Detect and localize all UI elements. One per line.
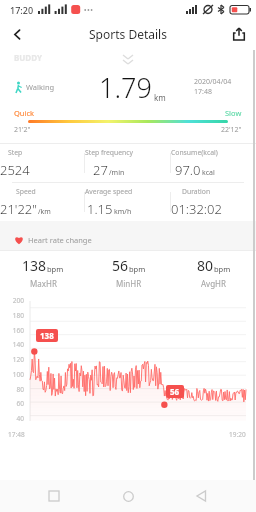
staticText: 138 bbox=[22, 256, 47, 275]
staticText: bpm bbox=[47, 264, 64, 274]
staticText: 138 bbox=[40, 330, 54, 341]
staticText: 80 bbox=[197, 256, 214, 275]
staticText: 56 bbox=[112, 256, 129, 275]
staticText: 120 bbox=[6, 355, 24, 364]
staticText: 2524 bbox=[0, 161, 30, 179]
staticText: 56 bbox=[170, 386, 180, 397]
staticText: 19:20 bbox=[229, 430, 246, 439]
staticText: 01:32:02 bbox=[171, 200, 222, 218]
button[interactable]: Recent apps bbox=[34, 480, 74, 512]
staticText: 27 bbox=[93, 161, 108, 179]
staticText: 22'12" bbox=[221, 125, 242, 135]
staticText: 140 bbox=[6, 340, 24, 349]
staticText: 80 bbox=[6, 385, 24, 394]
staticText: 160 bbox=[6, 326, 24, 335]
staticText: 1.15 bbox=[87, 200, 113, 218]
button[interactable]: Home bbox=[108, 480, 148, 512]
staticText: 21'2" bbox=[14, 125, 31, 135]
staticText: km/h bbox=[114, 207, 132, 217]
staticText: bpm bbox=[129, 264, 146, 274]
staticText: MinHR bbox=[116, 278, 142, 289]
staticText: 60 bbox=[6, 399, 24, 408]
staticText: 40 bbox=[6, 414, 24, 423]
staticText: 21'22" bbox=[0, 200, 37, 218]
button[interactable]: Back bbox=[0, 20, 34, 48]
staticText: Consume(kcal) bbox=[171, 148, 218, 157]
staticText: Slow bbox=[225, 108, 242, 118]
staticText: km bbox=[154, 92, 166, 103]
staticText: bpm bbox=[214, 264, 231, 274]
staticText: MaxHR bbox=[30, 278, 57, 289]
staticText: 97.0 bbox=[175, 161, 201, 179]
staticText: AvgHR bbox=[201, 278, 226, 289]
staticText: 200 bbox=[6, 296, 24, 305]
staticText: Average speed bbox=[85, 187, 133, 196]
staticText: /km bbox=[38, 207, 51, 217]
staticText: Step bbox=[8, 148, 23, 157]
staticText: 100 bbox=[6, 370, 24, 379]
staticText: kcal bbox=[202, 168, 215, 178]
staticText: Speed bbox=[16, 187, 36, 196]
staticText: 1.79 bbox=[99, 69, 152, 106]
staticText: 17:48 bbox=[8, 430, 25, 439]
staticText: Walking bbox=[26, 82, 55, 92]
button[interactable]: Share bbox=[222, 20, 256, 48]
staticText: Heart rate change bbox=[28, 235, 92, 245]
staticText: Duration bbox=[182, 187, 211, 196]
button[interactable]: Back bbox=[182, 480, 222, 512]
staticText: 180 bbox=[6, 311, 24, 320]
staticText: 2020/04/04 bbox=[194, 77, 232, 87]
staticText: 17:20 bbox=[10, 4, 34, 16]
staticText: Step frequency bbox=[85, 148, 133, 157]
staticText: Quick bbox=[14, 108, 35, 118]
staticText: /min bbox=[109, 168, 125, 178]
staticText: BUDDY bbox=[14, 52, 43, 63]
staticText: Sports Details bbox=[89, 26, 167, 42]
staticText: 17:48 bbox=[194, 87, 212, 97]
